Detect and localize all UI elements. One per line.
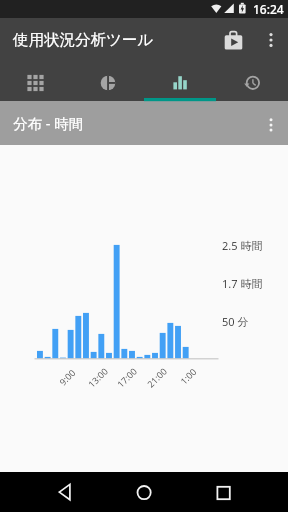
staticText: 13:00 <box>85 364 111 390</box>
button[interactable] <box>144 62 216 101</box>
staticText: 使用状況分析ツール <box>13 30 154 50</box>
button[interactable] <box>216 62 288 101</box>
button[interactable] <box>72 62 144 101</box>
button[interactable] <box>0 62 72 101</box>
staticText: 1:00 <box>177 365 199 387</box>
staticText: 分布 - 時間 <box>13 113 84 133</box>
button[interactable] <box>120 472 168 512</box>
button[interactable] <box>219 22 255 58</box>
staticText: 17:00 <box>114 364 140 390</box>
button[interactable] <box>253 103 288 143</box>
staticText: 2.5 時間 <box>222 238 263 253</box>
staticText: 9:00 <box>56 366 78 388</box>
button[interactable] <box>41 472 89 512</box>
staticText: 16:24 <box>253 1 284 17</box>
button[interactable] <box>253 22 288 58</box>
staticText: 1.7 時間 <box>222 276 263 291</box>
staticText: 21:00 <box>144 364 170 390</box>
button[interactable] <box>199 472 247 512</box>
staticText: 50 分 <box>222 314 249 329</box>
